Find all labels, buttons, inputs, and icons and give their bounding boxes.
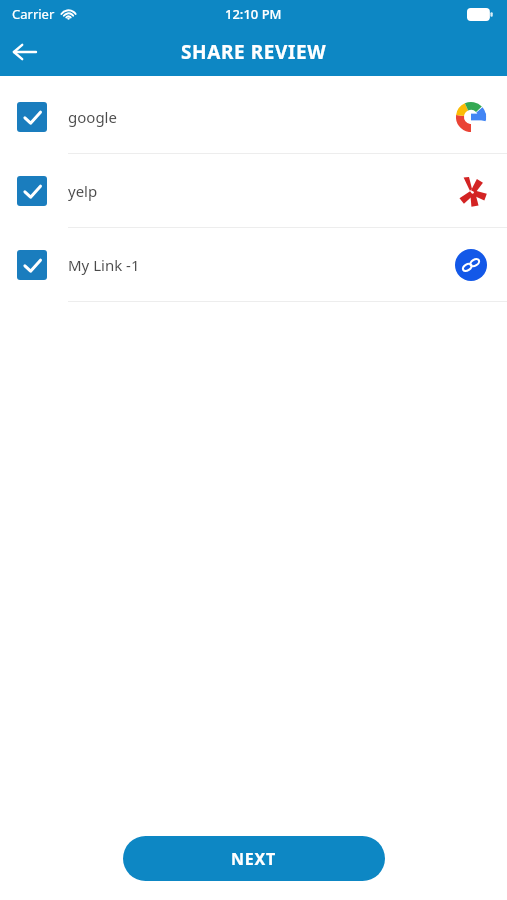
other: Checked xyxy=(17,102,47,132)
staticText: google xyxy=(68,107,455,127)
staticText: yelp xyxy=(68,181,457,201)
staticText: NEXT xyxy=(231,848,277,870)
button[interactable]: Back xyxy=(0,28,48,76)
other: Checked xyxy=(17,176,47,206)
button[interactable]: NEXT xyxy=(123,836,385,881)
staticText: SHARE REVIEW xyxy=(181,39,327,65)
staticText: 12:10 PM xyxy=(225,5,282,23)
button[interactable]: Checked xyxy=(0,228,507,301)
staticText: My Link -1 xyxy=(68,255,455,275)
button[interactable]: Checked xyxy=(0,80,507,153)
other: Checked xyxy=(17,250,47,280)
button[interactable]: Checked xyxy=(0,154,507,227)
staticText: Carrier xyxy=(12,5,55,23)
